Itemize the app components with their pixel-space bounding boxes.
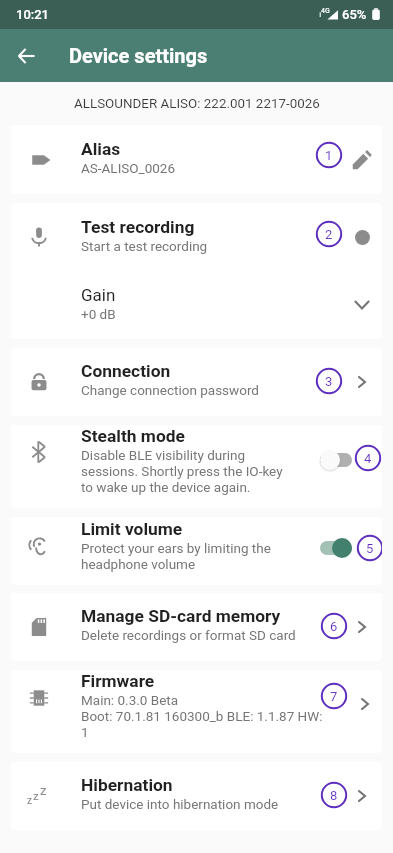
button[interactable]: Switch off — [315, 447, 355, 473]
staticText: z — [27, 795, 32, 807]
staticText: Hibernation — [81, 775, 173, 795]
staticText: Manage SD-card memory — [81, 606, 281, 626]
button[interactable]: Connection — [11, 348, 382, 416]
staticText: Alias — [81, 139, 121, 159]
staticText: Test recording — [81, 217, 195, 237]
button[interactable]: Step 4 — [355, 445, 381, 471]
staticText: Connection — [81, 361, 171, 381]
button[interactable]: Limit volume — [11, 517, 382, 585]
button[interactable]: Step 1 — [316, 142, 342, 168]
button[interactable]: Step 3 — [316, 368, 342, 394]
staticText: 10:21 — [16, 7, 50, 22]
button[interactable]: Expand gain — [349, 292, 375, 318]
button[interactable]: Step 5 — [357, 535, 382, 561]
staticText: 4 — [364, 451, 372, 466]
staticText: Limit volume — [81, 519, 183, 539]
staticText: 65% — [342, 7, 367, 22]
staticText: AS-ALISO_0026 — [81, 160, 176, 176]
button[interactable]: Edit alias — [349, 147, 375, 173]
staticText: Delete recordings or format SD card — [81, 627, 296, 643]
staticText: Firmware — [81, 671, 155, 691]
staticText: Main: 0.3.0 Beta Boot: 70.1.81 160300_b … — [81, 692, 324, 740]
button[interactable]: Step 7 — [321, 683, 347, 709]
button[interactable]: Open — [349, 614, 375, 640]
button[interactable]: Step 6 — [321, 613, 347, 639]
staticText: Change connection password — [81, 382, 259, 398]
staticText: Disable BLE visibility during sessions. … — [81, 447, 289, 495]
button[interactable]: Alias — [11, 125, 382, 194]
staticText: 8 — [330, 788, 338, 803]
staticText: +0 dB — [81, 306, 116, 322]
staticText: Gain — [81, 285, 116, 305]
staticText: 4G — [321, 7, 330, 15]
staticText: 1 — [325, 148, 333, 163]
staticText: Start a test recording — [81, 238, 208, 254]
button[interactable]: Stealth mode — [11, 425, 382, 508]
button[interactable]: Open — [352, 691, 378, 717]
button[interactable]: Open — [349, 369, 375, 395]
button[interactable]: Firmware — [11, 670, 382, 753]
button[interactable]: Gain — [11, 271, 382, 339]
staticText: 7 — [330, 689, 338, 704]
button[interactable]: Test recording — [11, 203, 382, 271]
staticText: z — [40, 783, 47, 798]
staticText: 3 — [325, 374, 333, 389]
staticText: ALLSOUNDER ALISO: 222.001 2217-0026 — [74, 96, 320, 112]
staticText: z — [33, 789, 39, 802]
button[interactable]: Switch on — [315, 535, 355, 561]
staticText: 2 — [325, 227, 333, 242]
button[interactable]: Back — [12, 42, 40, 70]
staticText: 6 — [330, 619, 338, 634]
staticText: Protect your ears by limiting the headph… — [81, 540, 289, 572]
staticText: 5 — [366, 541, 374, 556]
button[interactable]: Step 8 — [321, 782, 347, 808]
button[interactable]: z — [11, 762, 382, 830]
button[interactable]: Open — [349, 783, 375, 809]
staticText: Stealth mode — [81, 426, 185, 446]
button[interactable]: Manage SD-card memory — [11, 593, 382, 661]
staticText: Put device into hibernation mode — [81, 796, 279, 812]
staticText: Device settings — [69, 44, 208, 67]
button[interactable]: Step 2 — [316, 221, 342, 247]
